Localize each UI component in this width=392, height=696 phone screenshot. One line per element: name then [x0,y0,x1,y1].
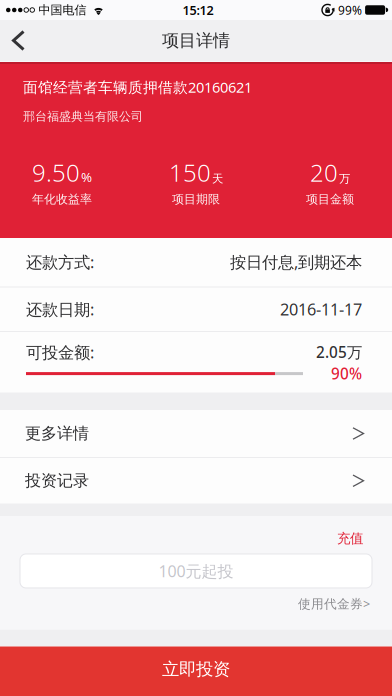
staticText: 9.50 [32,156,80,189]
staticText: 项目详情 [162,30,230,51]
button[interactable]: 立即投资 [0,646,392,696]
staticText: 天 [212,171,223,186]
staticText: 还款方式: [26,251,94,273]
staticText: 还款日期: [26,298,94,320]
button[interactable]: 投资记录 [0,458,392,503]
staticText: 2016-11-17 [280,298,362,320]
staticText: 邢台福盛典当有限公司 [23,109,143,124]
staticText: 100元起投 [158,560,233,582]
staticText: 90% [331,363,362,384]
staticText: 万 [339,171,350,186]
staticText: 面馆经营者车辆质押借款20160621 [23,77,252,97]
staticText: 中国电信 [38,2,86,17]
button[interactable]: 使用代金券> [298,595,370,612]
staticText: 99% [338,2,362,18]
staticText: 按日付息,到期还本 [230,251,362,273]
staticText: 150 [169,156,211,189]
staticText: 立即投资 [162,658,230,680]
staticText: 项目金额 [306,192,354,207]
staticText: 20 [310,156,338,189]
staticText: 项目期限 [172,192,220,207]
button[interactable]: 充值 [337,530,363,547]
staticText: 2.05万 [316,342,362,362]
staticText: 更多详情 [25,423,89,444]
staticText: 使用代金券> [298,595,370,612]
button[interactable]: Back [0,20,43,61]
button[interactable]: 100元起投 [20,554,372,588]
staticText: 充值 [337,530,363,547]
staticText: 年化收益率 [32,192,92,207]
staticText: 投资记录 [25,471,89,491]
button[interactable]: 更多详情 [0,410,392,457]
staticText: % [81,168,92,186]
staticText: 可投金额: [26,341,94,363]
staticText: 15:12 [182,1,213,19]
